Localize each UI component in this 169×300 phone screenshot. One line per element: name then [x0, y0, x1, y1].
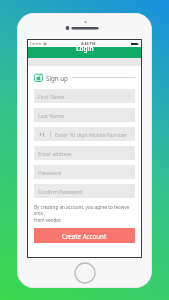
other: Sign up — [34, 73, 43, 82]
button[interactable]: Last Name — [34, 108, 135, 122]
staticText: Enter 10 digit Mobile Number — [55, 131, 128, 138]
staticText: Enter address — [38, 150, 72, 157]
staticText: Carrier — [30, 41, 42, 46]
staticText: Confirm Password — [38, 188, 83, 195]
button[interactable]: Create Account — [34, 228, 135, 243]
button[interactable]: Password — [34, 165, 135, 179]
button[interactable]: Login — [28, 47, 141, 58]
button[interactable]: First Name — [34, 89, 135, 103]
staticText: Password — [38, 169, 62, 176]
button[interactable]: +1 — [34, 127, 135, 141]
staticText: Last Name — [38, 112, 64, 119]
staticText: Create Account — [62, 232, 107, 240]
button[interactable]: Enter address — [34, 146, 135, 160]
staticText: Login — [76, 44, 94, 53]
staticText: +1 — [39, 131, 45, 138]
staticText: First Name — [38, 93, 65, 100]
button[interactable]: Confirm Password — [34, 184, 135, 198]
staticText: Sign up — [46, 74, 68, 82]
staticText: By creating an account, you agree to rec… — [34, 204, 135, 216]
staticText: 4:48 PM — [81, 41, 96, 46]
staticText: from vendor. — [34, 217, 62, 223]
button[interactable]: Sign up — [34, 73, 135, 82]
